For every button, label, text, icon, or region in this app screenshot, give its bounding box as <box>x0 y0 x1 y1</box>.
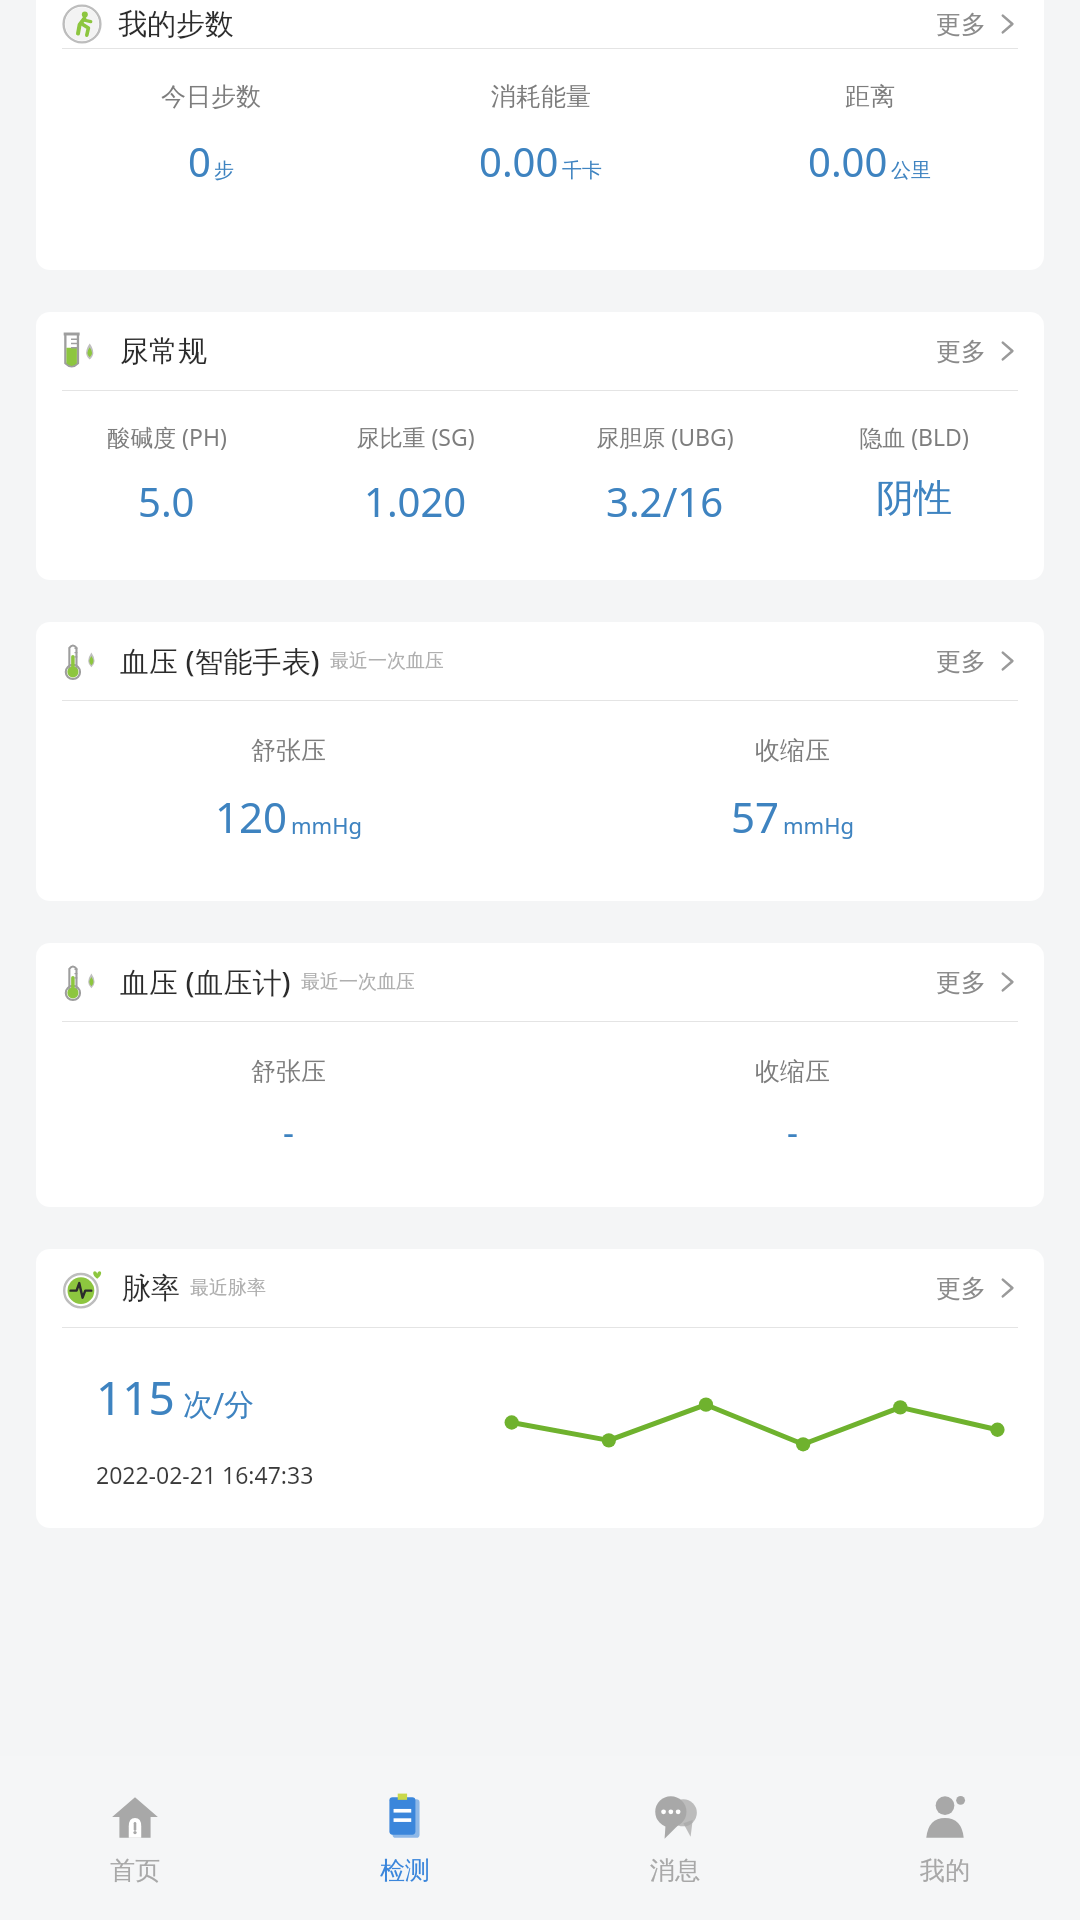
staticText: 1.020 <box>364 474 467 528</box>
staticText: 尿胆原 (UBG) <box>596 421 734 452</box>
staticText: 57 <box>731 788 780 845</box>
staticText: 消耗能量 <box>491 81 591 112</box>
staticText: 收缩压 <box>755 1056 830 1087</box>
staticText: 检测 <box>380 1855 430 1886</box>
staticText: 更多 <box>936 967 986 998</box>
staticText: 3.2/16 <box>606 474 724 528</box>
staticText: 更多 <box>936 9 986 40</box>
button[interactable]: 检测 <box>270 1756 540 1920</box>
staticText: 公里 <box>891 158 931 183</box>
staticText: 隐血 (BLD) <box>859 421 969 452</box>
staticText: 更多 <box>936 646 986 677</box>
staticText: 最近一次血压 <box>301 970 415 994</box>
staticText: 我的 <box>920 1855 970 1886</box>
staticText: 千卡 <box>562 158 602 183</box>
staticText: 最近脉率 <box>190 1276 266 1300</box>
button[interactable]: 血压 (智能手表) <box>36 622 1044 700</box>
staticText: 消息 <box>650 1855 700 1886</box>
staticText: 我的步数 <box>118 6 234 43</box>
button[interactable]: 尿常规 <box>36 312 1044 390</box>
staticText: 脉率 <box>122 1270 180 1307</box>
staticText: 阴性 <box>876 474 952 522</box>
staticText: 120 <box>215 788 288 845</box>
staticText: 0.00 <box>808 134 888 188</box>
staticText: 最近一次血压 <box>330 649 444 673</box>
staticText: 酸碱度 (PH) <box>107 421 227 452</box>
button[interactable]: 脉率 <box>36 1249 1044 1327</box>
staticText: 2022-02-21 16:47:33 <box>96 1459 314 1490</box>
staticText: 距离 <box>845 81 895 112</box>
staticText: 0.00 <box>479 134 559 188</box>
staticText: 次/分 <box>183 1383 255 1424</box>
staticText: 0 <box>188 134 211 188</box>
staticText: 尿比重 (SG) <box>356 421 475 452</box>
staticText: - <box>787 1109 798 1155</box>
staticText: 尿常规 <box>120 333 207 370</box>
staticText: - <box>283 1109 294 1155</box>
staticText: 首页 <box>110 1855 160 1886</box>
staticText: mmHg <box>783 810 854 840</box>
button[interactable]: 消息 <box>540 1756 810 1920</box>
staticText: 步 <box>214 158 234 183</box>
button[interactable]: 首页 <box>0 1756 270 1920</box>
button[interactable]: 我的步数 <box>36 0 1044 48</box>
staticText: mmHg <box>291 810 362 840</box>
button[interactable]: 血压 (血压计) <box>36 943 1044 1021</box>
staticText: 舒张压 <box>251 735 326 766</box>
staticText: 舒张压 <box>251 1056 326 1087</box>
staticText: 收缩压 <box>755 735 830 766</box>
staticText: 115 <box>96 1366 175 1429</box>
button[interactable]: 我的 <box>810 1756 1080 1920</box>
staticText: 今日步数 <box>161 81 261 112</box>
staticText: 血压 (智能手表) <box>120 641 320 681</box>
staticText: 5.0 <box>138 474 195 528</box>
staticText: 血压 (血压计) <box>120 962 291 1002</box>
staticText: 更多 <box>936 336 986 367</box>
staticText: 更多 <box>936 1273 986 1304</box>
